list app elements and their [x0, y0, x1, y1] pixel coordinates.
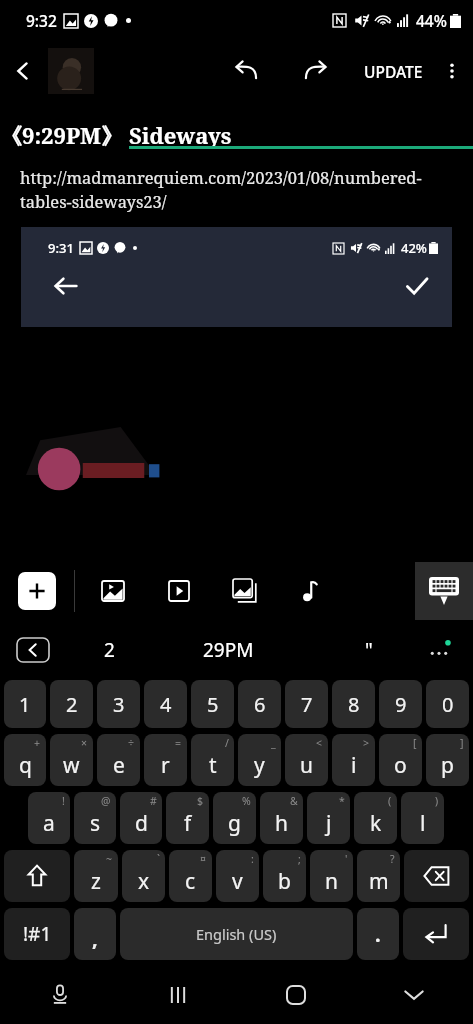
- button[interactable]: 29PM: [195, 629, 262, 671]
- button[interactable]: UPDATE: [356, 53, 431, 90]
- button[interactable]: Recent apps: [119, 966, 237, 1024]
- staticText: http://madmanrequiem.com/2023/01/08/numb…: [20, 166, 453, 213]
- staticText: 7: [301, 691, 313, 718]
- button[interactable]: Previous suggestions: [16, 637, 50, 663]
- button[interactable]: Backspace: [404, 850, 469, 902]
- staticText: 3: [113, 691, 125, 718]
- button[interactable]: !#1: [4, 908, 70, 960]
- button[interactable]: @: [74, 792, 116, 844]
- button[interactable]: ,: [74, 908, 116, 960]
- button[interactable]: 4: [144, 680, 187, 728]
- staticText: 0: [442, 691, 454, 718]
- staticText: f: [184, 809, 192, 838]
- button[interactable]: English (US): [120, 908, 353, 960]
- button[interactable]: Confirm: [400, 269, 434, 303]
- button[interactable]: 6: [238, 680, 281, 728]
- button[interactable]: ~: [74, 850, 118, 902]
- button[interactable]: ?: [357, 850, 400, 902]
- button[interactable]: ÷: [97, 734, 140, 786]
- staticText: Sideways: [129, 120, 232, 150]
- button[interactable]: +: [4, 734, 46, 786]
- staticText: 2: [66, 691, 78, 718]
- button[interactable]: *: [307, 792, 350, 844]
- button[interactable]: Undo: [222, 47, 270, 95]
- button[interactable]: ;: [263, 850, 306, 902]
- staticText: b: [278, 867, 291, 896]
- button[interactable]: Insert audio: [293, 573, 329, 609]
- staticText: ~: [106, 852, 113, 866]
- button[interactable]: ]: [426, 734, 469, 786]
- staticText: d: [135, 809, 148, 838]
- button[interactable]: Hide keyboard: [355, 966, 473, 1024]
- button[interactable]: 7: [285, 680, 328, 728]
- button[interactable]: 2: [50, 680, 93, 728]
- staticText: <: [316, 736, 323, 750]
- staticText: _: [271, 736, 276, 750]
- button[interactable]: %: [213, 792, 256, 844]
- staticText: &: [290, 794, 298, 808]
- staticText: 6: [254, 691, 266, 718]
- staticText: English (US): [196, 924, 277, 944]
- button[interactable]: Voice input: [0, 966, 119, 1024]
- button[interactable]: 9: [379, 680, 422, 728]
- button[interactable]: (: [354, 792, 397, 844]
- button[interactable]: 1: [4, 680, 46, 728]
- staticText: 44%: [416, 10, 447, 31]
- button[interactable]: Shift: [4, 850, 70, 902]
- staticText: ": [365, 637, 373, 663]
- button[interactable]: !: [28, 792, 70, 844]
- staticText: ?: [390, 852, 395, 866]
- button[interactable]: Enter: [403, 908, 469, 960]
- button[interactable]: ×: [50, 734, 93, 786]
- staticText: p: [441, 751, 454, 780]
- staticText: 9: [395, 691, 407, 718]
- button[interactable]: Insert image: [95, 573, 131, 609]
- button[interactable]: 5: [191, 680, 234, 728]
- button[interactable]: Add: [18, 572, 56, 610]
- button[interactable]: Back: [49, 269, 83, 303]
- staticText: e: [113, 751, 125, 780]
- button[interactable]: ): [401, 792, 444, 844]
- staticText: ': [345, 852, 348, 866]
- button[interactable]: 2: [96, 629, 123, 671]
- button[interactable]: =: [144, 734, 187, 786]
- button[interactable]: #: [120, 792, 162, 844]
- staticText: >: [363, 736, 370, 750]
- button[interactable]: 0: [426, 680, 469, 728]
- button[interactable]: `: [122, 850, 165, 902]
- staticText: 9:31: [48, 239, 74, 257]
- button[interactable]: [: [379, 734, 422, 786]
- button[interactable]: ': [310, 850, 353, 902]
- button[interactable]: More options: [431, 50, 473, 92]
- button[interactable]: Home: [237, 966, 355, 1024]
- button[interactable]: &: [260, 792, 303, 844]
- button[interactable]: Insert video: [161, 573, 197, 609]
- staticText: 1: [19, 691, 31, 718]
- staticText: /: [225, 736, 229, 750]
- staticText: j: [326, 809, 332, 838]
- button[interactable]: 9:31: [21, 227, 452, 327]
- button[interactable]: .: [357, 908, 399, 960]
- button[interactable]: >: [332, 734, 375, 786]
- staticText: ×: [81, 736, 88, 750]
- button[interactable]: /: [191, 734, 234, 786]
- staticText: w: [63, 751, 80, 780]
- staticText: ]: [460, 736, 464, 750]
- button[interactable]: Keyboard: [415, 562, 473, 620]
- button[interactable]: More suggestions: [419, 630, 459, 670]
- button[interactable]: ": [357, 629, 381, 671]
- staticText: n: [325, 867, 338, 896]
- button[interactable]: :: [216, 850, 259, 902]
- button[interactable]: Album art: [46, 48, 96, 94]
- button[interactable]: Back: [0, 48, 46, 94]
- button[interactable]: ¤: [169, 850, 212, 902]
- button[interactable]: Insert gallery: [227, 573, 263, 609]
- button[interactable]: _: [238, 734, 281, 786]
- staticText: *: [339, 794, 345, 808]
- button[interactable]: 8: [332, 680, 375, 728]
- button[interactable]: <: [285, 734, 328, 786]
- button[interactable]: $: [166, 792, 209, 844]
- staticText: `: [157, 852, 160, 866]
- button[interactable]: Redo: [292, 47, 340, 95]
- button[interactable]: 3: [97, 680, 140, 728]
